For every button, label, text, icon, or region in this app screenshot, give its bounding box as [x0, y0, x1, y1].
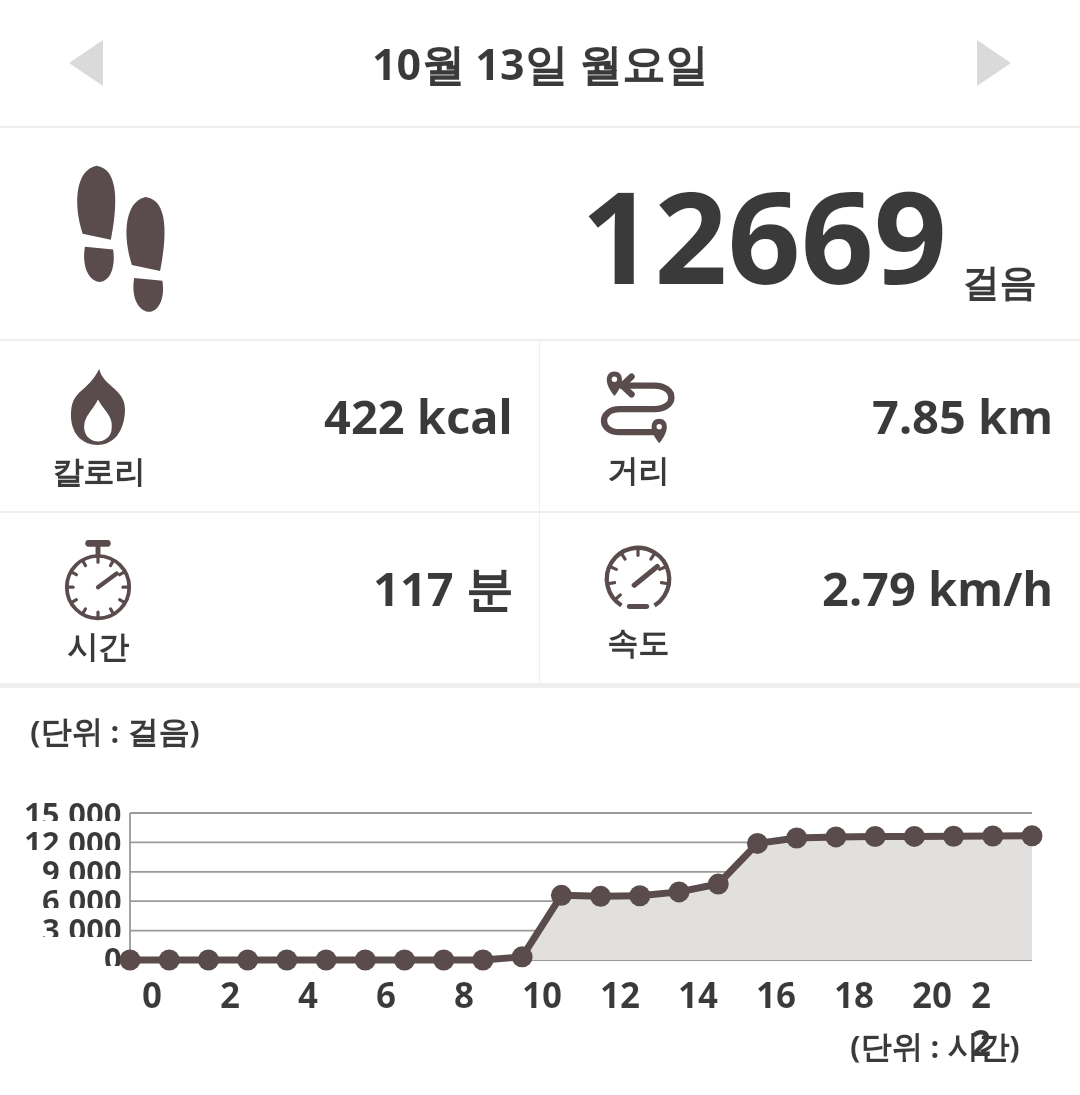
staticText: 칼로리 — [52, 453, 145, 492]
button[interactable]: 칼로리 — [0, 341, 539, 511]
staticText: 10월 13일 월요일 — [372, 34, 708, 93]
staticText: 10 — [522, 971, 563, 1019]
staticText: 4 — [298, 971, 319, 1019]
staticText: (단위 : 걸음) — [30, 710, 200, 752]
staticText: 9,000 — [42, 850, 122, 879]
staticText: 8 — [454, 971, 475, 1019]
staticText: 12669 — [581, 147, 948, 321]
staticText: 걸음 — [962, 260, 1036, 307]
staticText: (단위 : 시간) — [850, 1025, 1020, 1067]
button[interactable]: 시간 — [0, 513, 539, 683]
staticText: 20 — [912, 971, 953, 1019]
staticText: 3,000 — [42, 908, 122, 937]
staticText: 7.85 km — [872, 384, 1054, 448]
staticText: 시간 — [67, 628, 129, 667]
staticText: 0 — [104, 937, 122, 966]
staticText: 15,000 — [24, 792, 122, 821]
staticText: 0 — [142, 971, 163, 1019]
button[interactable]: 거리 — [540, 341, 1080, 511]
button[interactable]: Next day — [956, 25, 1032, 101]
staticText: 117 분 — [373, 556, 513, 620]
staticText: 22 — [971, 971, 1011, 1067]
staticText: 2 — [220, 971, 241, 1019]
staticText: 16 — [756, 971, 797, 1019]
staticText: 422 kcal — [324, 384, 513, 448]
staticText: 12,000 — [24, 821, 122, 850]
staticText: 18 — [834, 971, 875, 1019]
staticText: 거리 — [607, 452, 669, 491]
staticText: 속도 — [607, 624, 669, 663]
staticText: 6,000 — [42, 879, 122, 908]
staticText: 6 — [376, 971, 397, 1019]
staticText: 2.79 km/h — [822, 556, 1054, 620]
staticText: 12 — [600, 971, 641, 1019]
staticText: 14 — [678, 971, 719, 1019]
button[interactable]: 12669 — [0, 128, 1080, 339]
button[interactable]: 속도 — [540, 513, 1080, 683]
button[interactable]: Previous day — [48, 25, 124, 101]
